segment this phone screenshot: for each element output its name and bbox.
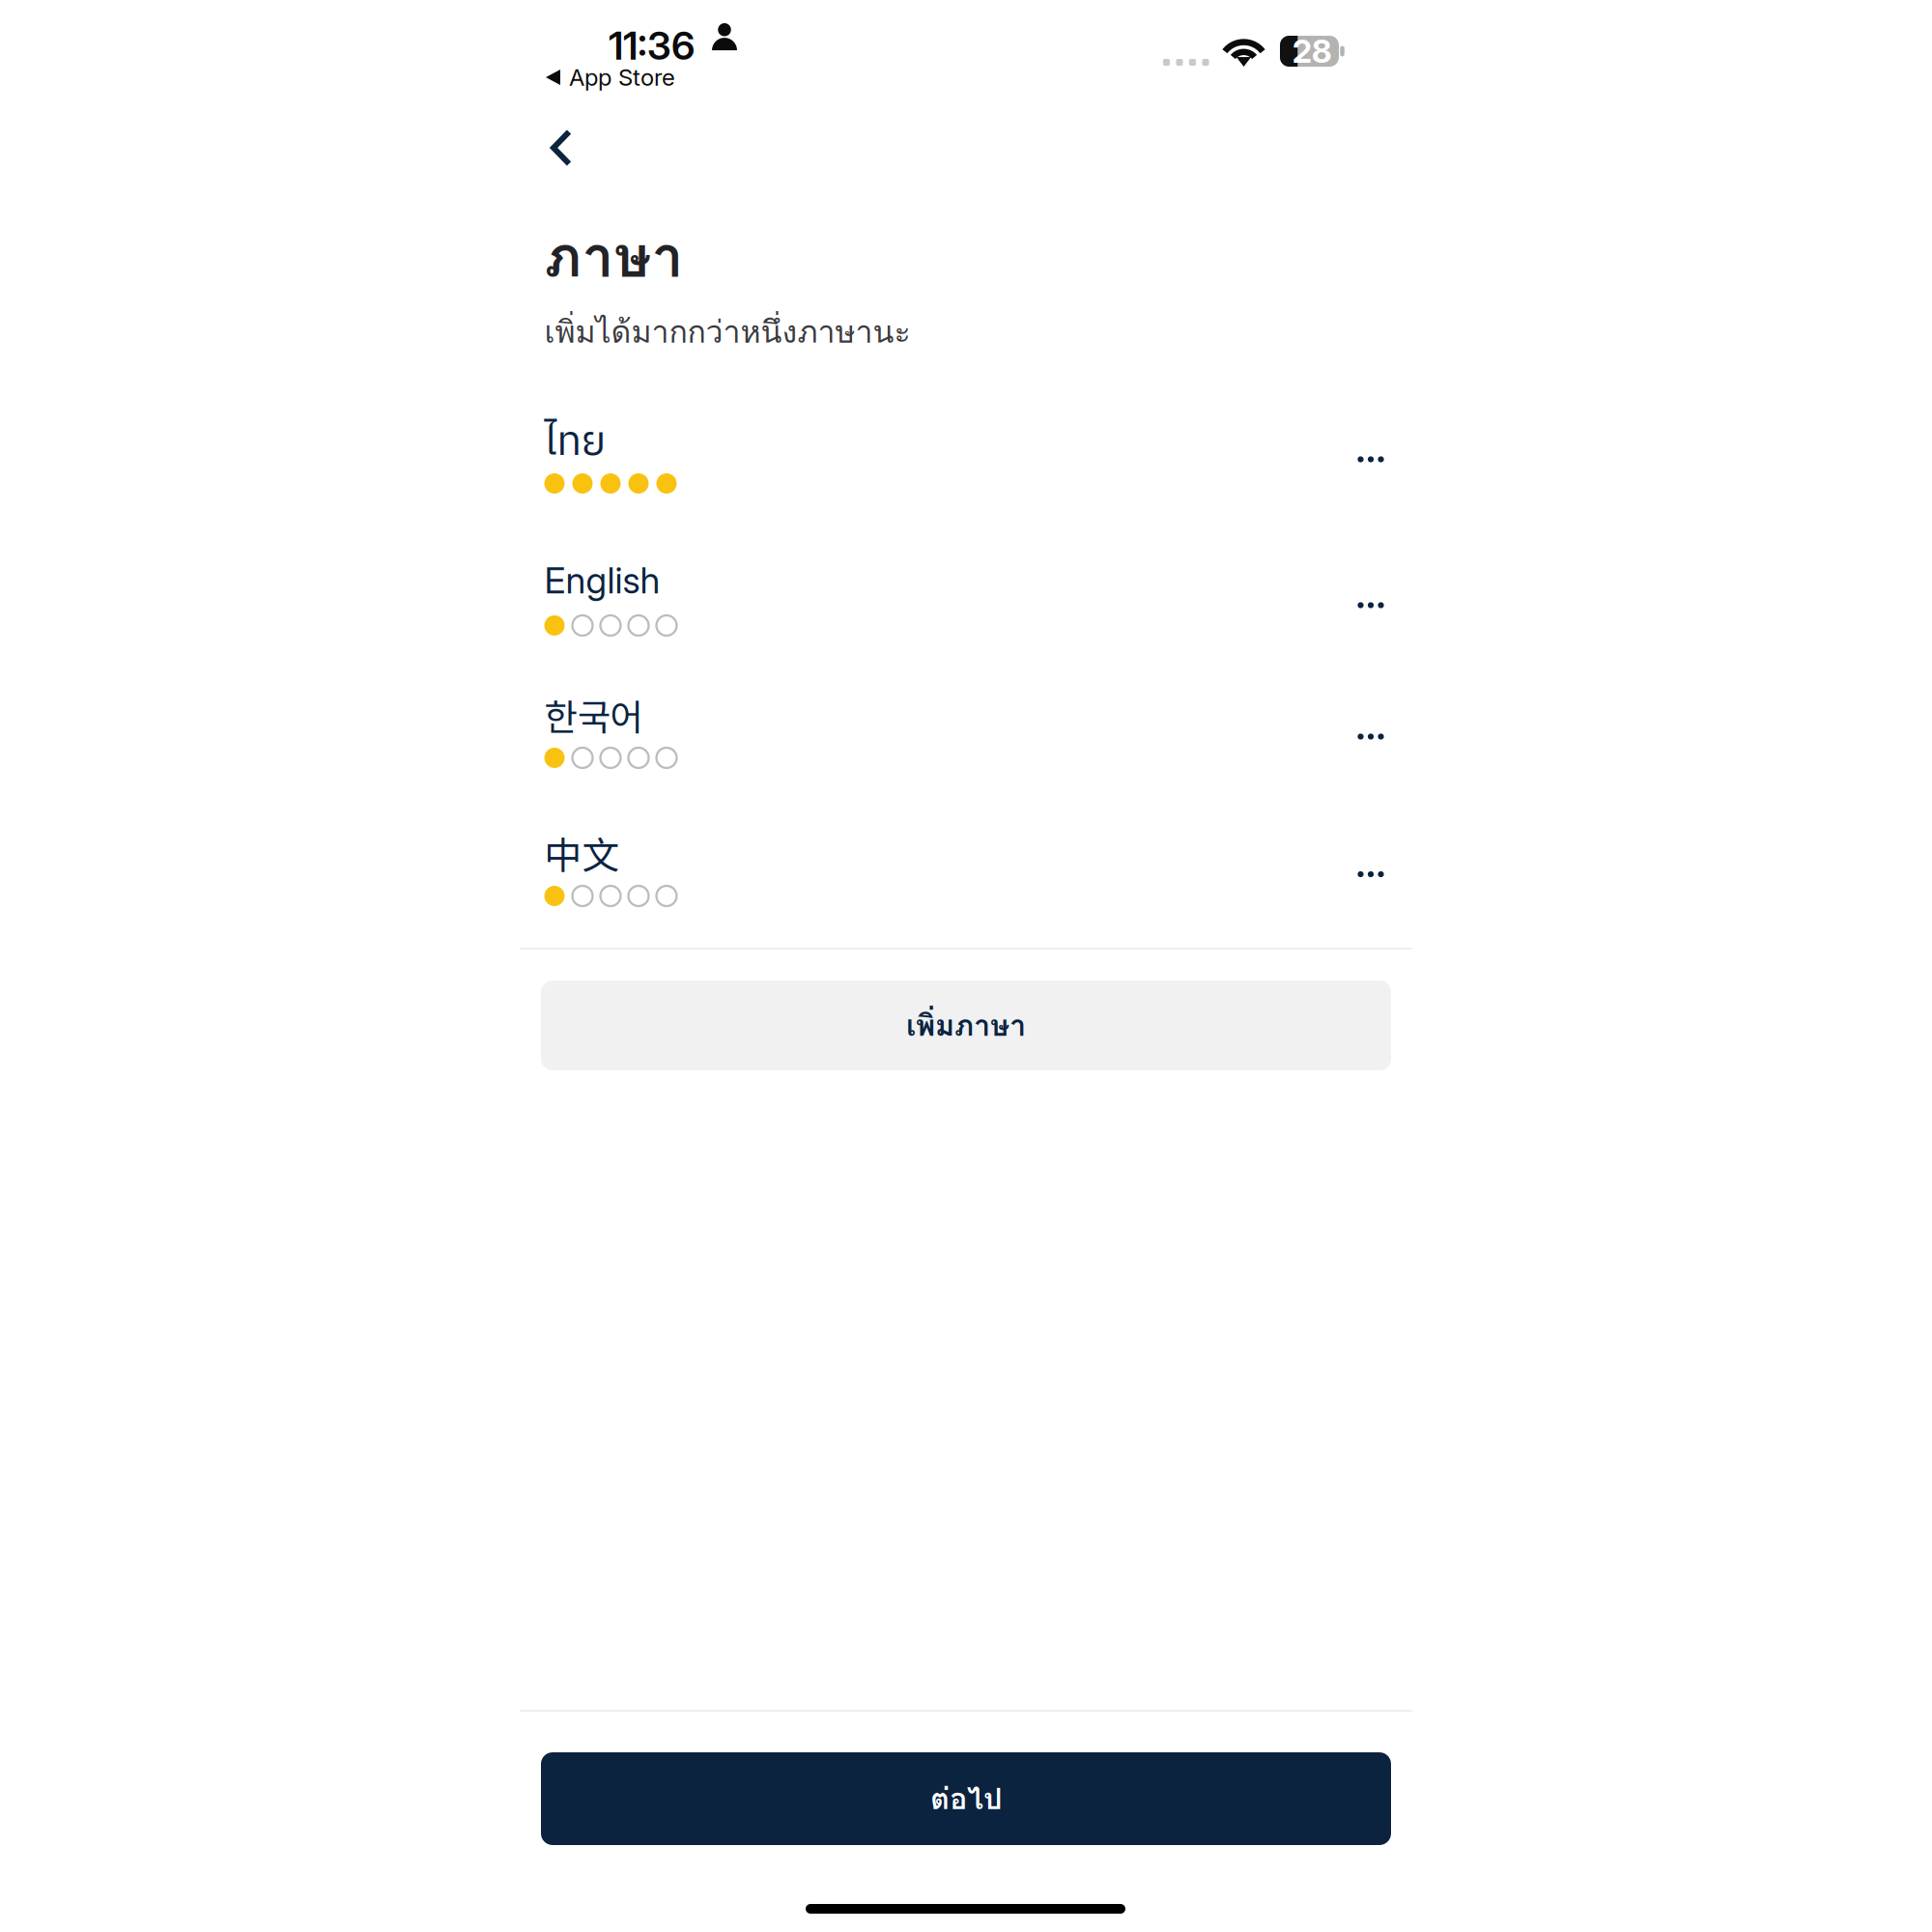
- staticText: English: [544, 558, 660, 602]
- button[interactable]: ต่อไป: [541, 1752, 1391, 1845]
- staticText: เพิ่มได้มากกว่าหนึ่งภาษานะ: [544, 307, 910, 356]
- button[interactable]: App Store: [546, 60, 675, 95]
- button[interactable]: More options for 中文: [1324, 828, 1417, 921]
- staticText: 11:36: [609, 22, 695, 69]
- staticText: เพิ่มภาษา: [906, 1002, 1026, 1049]
- staticText: 한국어: [544, 689, 643, 741]
- staticText: App Store: [569, 63, 675, 91]
- button[interactable]: เพิ่มภาษา: [541, 980, 1391, 1070]
- staticText: 中文: [544, 826, 620, 880]
- button[interactable]: More options for 한국어: [1324, 690, 1417, 783]
- staticText: ไทย: [544, 409, 606, 477]
- staticText: ภาษา: [544, 212, 683, 302]
- button[interactable]: More options for ไทย: [1324, 413, 1417, 506]
- staticText: ต่อไป: [930, 1775, 1002, 1822]
- staticText: 28: [1292, 32, 1332, 71]
- button[interactable]: More options for English: [1324, 559, 1417, 652]
- button[interactable]: Back: [515, 101, 608, 194]
